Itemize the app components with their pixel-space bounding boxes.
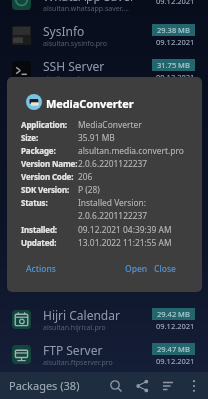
staticText: alsultan.hijrical.pro [43,323,106,333]
staticText: MediaConverter [78,119,142,130]
button[interactable]: Search [103,373,129,399]
button[interactable]: Hijri Calendar [0,302,208,337]
staticText: Packages (38) [9,378,80,393]
staticText: 09.12.2021 04:39:39 AM [78,224,172,235]
staticText: Actions [26,263,56,275]
button[interactable]: Close [151,260,179,278]
staticText: P (28) [78,184,100,195]
button[interactable]: More options [181,373,207,399]
staticText: Close [154,263,176,275]
staticText: Installed Version: 2.0.6.2201122237 [78,197,148,222]
button[interactable]: Actions [23,260,59,278]
staticText: 29.42 MB [157,309,190,319]
button[interactable]: Share [129,373,155,399]
staticText: MediaConverter [46,96,134,111]
button[interactable]: FTP Server [0,337,208,372]
staticText: Size: [21,132,39,143]
staticText: Hijri Calendar [43,307,120,323]
staticText: 09.12.2021 [156,321,195,331]
staticText: 09.12.2021 [156,356,195,366]
staticText: Package: [21,145,56,156]
staticText: 29.47 MB [157,344,190,354]
staticText: Status: [21,197,48,208]
staticText: alsultan.media.convert.pro [78,145,184,156]
staticText: 09.12.2021 [156,72,195,82]
staticText: alsultan.ftpserver.pro [43,358,113,368]
staticText: Installed: [21,224,57,235]
button[interactable]: Open [122,260,151,278]
staticText: Version Name: [21,158,78,169]
staticText: 13.01.2022 11:21:55 AM [78,237,172,248]
staticText: 31.75 MB [157,60,190,70]
staticText: 09.12.2021 [156,37,195,47]
staticText: alsultan.ssh.pro [43,74,96,84]
staticText: alsultan.sysinfo.pro [43,39,108,49]
staticText: WhatsApp Saver [43,0,136,4]
button[interactable]: WhatsApp Saver [0,0,208,18]
staticText: 29.38 MB [157,25,190,35]
staticText: 35.91 MB [78,132,115,143]
staticText: SDK Version: [21,184,70,195]
staticText: 09.12.2021 [156,0,195,6]
staticText: Open [125,263,148,275]
staticText: FTP Server [43,342,103,358]
staticText: 206 [78,171,93,182]
button[interactable]: SysInfo [0,18,208,53]
staticText: Updated: [21,237,57,248]
staticText: SysInfo [43,23,85,39]
staticText: alsultan.whatsapp.saver.... [43,4,129,14]
button[interactable]: Sort [155,373,181,399]
button[interactable]: SSH Server [0,53,208,88]
staticText: 2.0.6.2201122237 [78,158,148,169]
staticText: Version Code: [21,171,74,182]
staticText: SSH Server [43,58,105,74]
staticText: Application: [21,119,67,130]
